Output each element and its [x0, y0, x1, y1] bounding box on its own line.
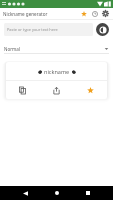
- button[interactable]: Paste or type your text here: [4, 23, 93, 36]
- button[interactable]: Share: [39, 81, 73, 99]
- button[interactable]: Home: [50, 186, 64, 200]
- button[interactable]: Favorites: [78, 8, 89, 19]
- button[interactable]: Recent apps: [81, 186, 95, 200]
- button[interactable]: Settings: [100, 8, 111, 19]
- button[interactable]: Favorite: [73, 81, 107, 99]
- button[interactable]: Normal: [4, 44, 109, 53]
- staticText: nickname: [44, 68, 70, 75]
- staticText: Paste or type your text here: [7, 27, 58, 32]
- button[interactable]: Copy: [6, 81, 39, 99]
- button[interactable]: Generate nickname: [96, 23, 109, 36]
- button[interactable]: History: [89, 8, 100, 19]
- staticText: Normal: [4, 46, 20, 52]
- staticText: Nickname generator: [3, 11, 48, 17]
- button[interactable]: Back: [18, 186, 32, 200]
